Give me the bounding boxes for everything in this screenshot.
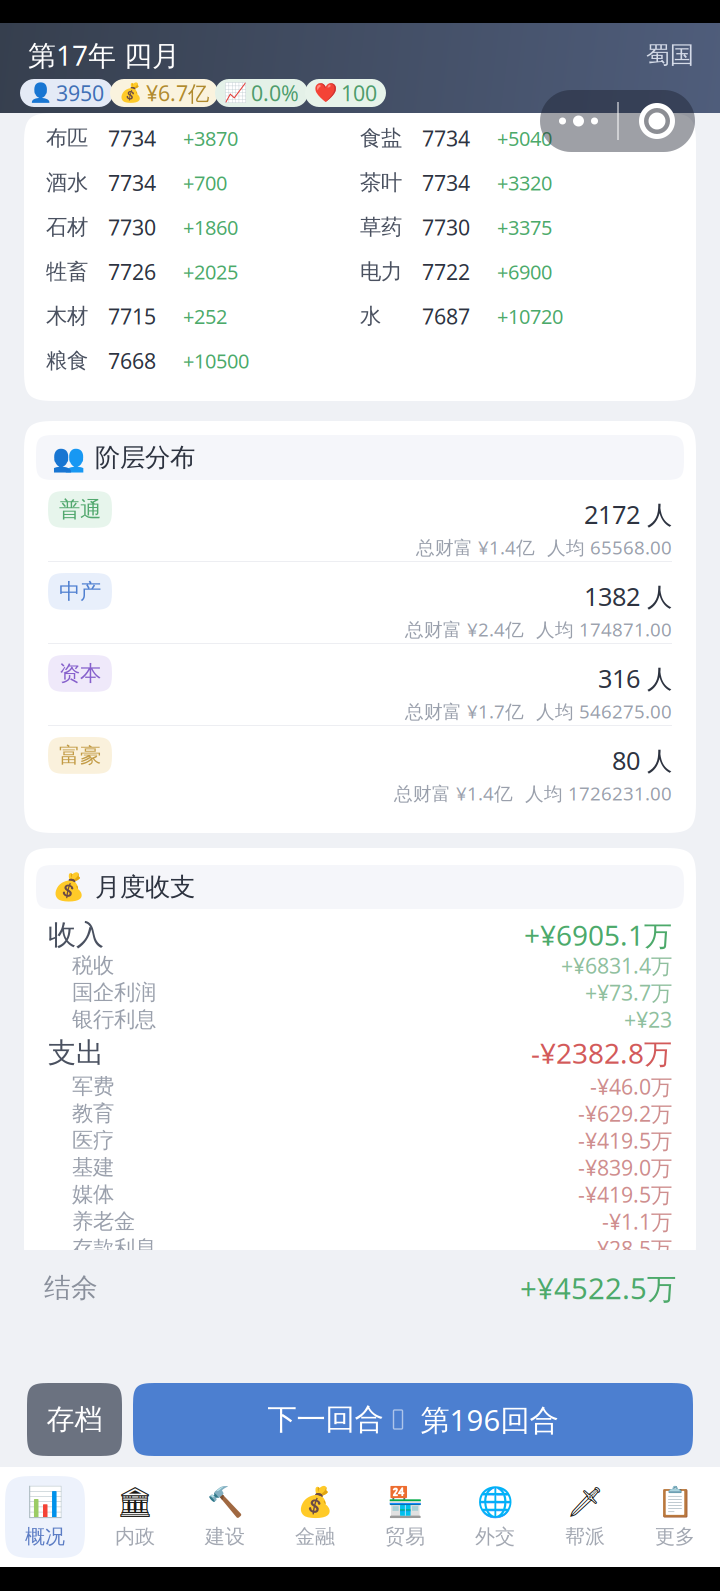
button[interactable]: 🔨 [180,1467,270,1567]
staticText: 金融 [295,1524,335,1549]
button[interactable]: 下一回合 [133,1383,693,1456]
button[interactable]: 🏪 [360,1467,450,1567]
staticText: 教育 [72,1100,114,1127]
staticText: 7734 [422,168,470,197]
staticText: 牲畜 [46,258,88,285]
staticText: +¥6905.1万 [524,916,672,954]
button[interactable]: Close [619,90,695,152]
staticText: 基建 [72,1154,114,1181]
staticText: 酒水 [46,169,88,196]
staticText: 🔨 [206,1485,243,1519]
staticText: -¥419.5万 [578,1126,672,1155]
staticText: 100 [341,78,377,108]
staticText: 阶层分布 [95,441,195,473]
staticText: 结余 [44,1271,98,1305]
staticText: +252 [183,303,227,330]
staticText: 粮食 [46,347,88,374]
staticText: +¥73.7万 [585,978,672,1007]
button[interactable]: 🌐 [450,1467,540,1567]
staticText: 水 [360,303,381,330]
staticText: 布匹 [46,125,88,152]
staticText: 存款利息 [72,1235,156,1262]
staticText: 总财富 ¥1.4亿 人均 1726231.00 [394,780,672,806]
staticText: 总财富 ¥1.4亿 人均 65568.00 [416,534,672,560]
staticText: 🏪 [386,1485,423,1519]
staticText: +10500 [183,347,249,374]
staticText: -¥2382.8万 [531,1034,672,1072]
staticText: ❤️ [314,82,337,104]
button[interactable]: 存档 [27,1383,122,1456]
staticText: -¥46.0万 [590,1072,672,1101]
staticText: +3320 [497,169,552,196]
staticText: 7734 [108,168,156,197]
staticText: 国企利润 [72,979,156,1006]
staticText: 养老金 [72,1208,135,1235]
staticText: 建设 [205,1524,245,1549]
staticText: 👥 [52,442,85,473]
staticText: 银行利息 [72,1006,156,1033]
staticText: 🗡 [566,1485,603,1519]
staticText: 316 人 [598,661,672,695]
staticText: 下一回合 [267,1401,383,1438]
staticText: 7726 [108,257,156,286]
staticText: 7730 [108,213,156,242]
staticText: 茶叶 [360,169,402,196]
staticText: 💰 [119,82,142,104]
staticText: 草药 [360,214,402,241]
staticText: 7668 [108,346,156,375]
staticText: +2025 [183,258,238,285]
button[interactable]: 📊 [0,1467,90,1567]
staticText: 资本 [59,660,101,687]
staticText: 普通 [59,496,101,523]
staticText: 0.0% [251,78,299,108]
staticText: 收入 [48,917,104,953]
staticText: -¥629.2万 [578,1099,672,1128]
staticText: -¥419.5万 [578,1180,672,1209]
staticText: +700 [183,169,227,196]
staticText: 贸易 [385,1524,425,1549]
staticText: +¥4522.5万 [520,1268,676,1308]
staticText: ¥6.7亿 [146,78,209,108]
button[interactable]: More [540,90,617,152]
staticText: 内政 [115,1524,155,1549]
staticText: 第196回合 [402,1399,558,1439]
button[interactable]: 🏛 [90,1467,180,1567]
staticText: +6900 [497,258,552,285]
staticText: 医疗 [72,1127,114,1154]
staticText: 第17年 四月 [28,36,180,74]
staticText: +¥23 [624,1005,672,1034]
staticText: 💰 [52,871,85,903]
staticText: 1382 人 [584,579,672,613]
staticText: 📊 [26,1485,63,1519]
staticText: +5040 [497,125,552,152]
staticText: +10720 [497,303,563,330]
staticText: 食盐 [360,125,402,152]
staticText: 支出 [48,1035,104,1071]
staticText: 军费 [72,1073,114,1100]
staticText: 石材 [46,214,88,241]
staticText: 7730 [422,213,470,242]
staticText: 存档 [46,1402,102,1437]
staticText: +¥6831.4万 [561,951,672,980]
staticText: 7715 [108,302,156,331]
staticText: 📈 [224,82,247,104]
button[interactable]: 📋 [630,1467,720,1567]
staticText: 电力 [360,258,402,285]
staticText: 🏛 [116,1485,153,1519]
staticText: -¥28.5万 [590,1234,672,1263]
staticText: +3375 [497,214,552,241]
staticText: 7687 [422,302,470,331]
staticText: 外交 [475,1524,515,1549]
staticText: 7734 [422,124,470,153]
staticText: 蜀国 [646,40,694,70]
staticText: 7722 [422,257,470,286]
staticText: 帮派 [565,1524,605,1549]
staticText: 总财富 ¥2.4亿 人均 174871.00 [405,616,672,642]
staticText: 中产 [59,578,101,605]
staticText: 80 人 [612,743,672,777]
staticText: 概况 [25,1524,65,1549]
staticText: 更多 [655,1524,695,1549]
staticText: 3950 [56,78,104,108]
button[interactable]: 💰 [270,1467,360,1567]
button[interactable]: 🗡 [540,1467,630,1567]
